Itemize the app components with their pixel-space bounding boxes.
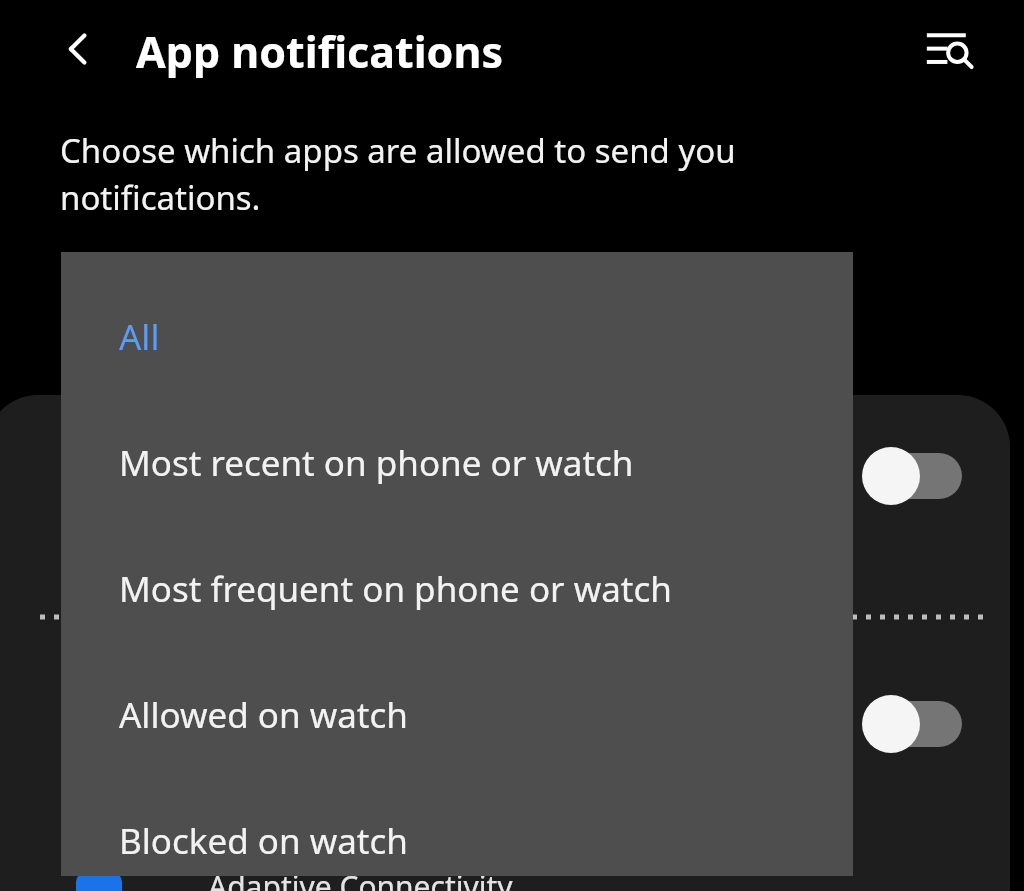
button[interactable]: All xyxy=(61,292,853,382)
button[interactable]: Search xyxy=(918,18,982,82)
button[interactable]: Toggle setting one xyxy=(862,446,974,506)
staticText: Choose which apps are allowed to send yo… xyxy=(60,128,860,220)
staticText: Blocked on watch xyxy=(119,817,408,865)
button[interactable]: Most recent on phone or watch xyxy=(61,418,853,508)
staticText: Allowed on watch xyxy=(119,691,408,739)
staticText: Most frequent on phone or watch xyxy=(119,565,672,613)
button[interactable]: Back xyxy=(50,20,108,78)
button[interactable]: Allowed on watch xyxy=(61,670,853,760)
staticText: App notifications xyxy=(136,22,503,81)
staticText: Most recent on phone or watch xyxy=(119,439,634,487)
button[interactable]: Toggle setting two xyxy=(862,694,974,754)
button[interactable]: Most frequent on phone or watch xyxy=(61,544,853,634)
staticText: Adaptive Connectivity xyxy=(208,866,513,891)
staticText: All xyxy=(119,313,160,361)
button[interactable]: Blocked on watch xyxy=(61,796,853,886)
